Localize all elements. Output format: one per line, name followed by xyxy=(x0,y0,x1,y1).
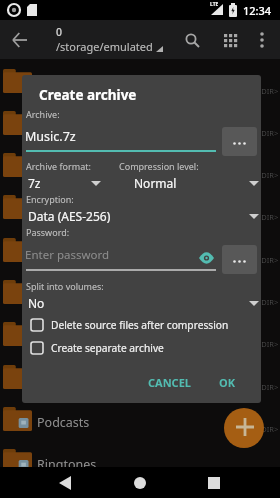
button[interactable] xyxy=(193,467,235,498)
staticText: <DIR> xyxy=(257,424,279,434)
button[interactable]: Alarms xyxy=(0,59,280,101)
button[interactable] xyxy=(249,27,275,53)
staticText: <DIR> xyxy=(257,170,279,180)
staticText: <DIR> xyxy=(257,339,279,349)
button[interactable]: OK xyxy=(208,371,247,393)
button[interactable] xyxy=(222,127,257,156)
staticText: <DIR> xyxy=(257,382,279,392)
button[interactable]: Music xyxy=(0,270,280,312)
button[interactable]: Ringtones xyxy=(0,439,280,481)
staticText: Encryption: xyxy=(26,193,74,205)
staticText: Download xyxy=(37,202,97,219)
staticText: Archive format: xyxy=(26,160,91,172)
staticText: Compression level: xyxy=(119,160,199,172)
button[interactable]: CANCEL xyxy=(132,371,207,393)
button[interactable]: 7z xyxy=(22,173,112,193)
staticText: Ringtones xyxy=(37,456,97,473)
button[interactable]: 0 xyxy=(56,25,163,54)
staticText: Alarms xyxy=(37,76,79,93)
staticText: Normal xyxy=(134,175,177,191)
staticText: Split into volumes: xyxy=(26,280,104,292)
staticText: 7z xyxy=(28,175,41,191)
staticText: <DIR> xyxy=(257,255,279,265)
staticText: CANCEL xyxy=(148,375,191,390)
button[interactable] xyxy=(119,467,161,498)
staticText: Create separate archive xyxy=(51,341,164,355)
button[interactable] xyxy=(222,245,257,274)
staticText: Create archive xyxy=(39,86,137,104)
button[interactable]: DCIM xyxy=(0,143,280,185)
staticText: <DIR> xyxy=(257,86,279,96)
staticText: 12:34 xyxy=(243,3,272,18)
staticText: Music xyxy=(37,287,72,304)
staticText: Delete source files after compression xyxy=(51,318,229,332)
button[interactable] xyxy=(6,26,34,54)
button[interactable]: Pictures xyxy=(0,355,280,397)
staticText: /storage/emulated xyxy=(56,39,153,54)
button[interactable]: Podcasts xyxy=(0,397,280,439)
button[interactable]: Create separate archive xyxy=(22,341,261,357)
button[interactable]: Download xyxy=(0,185,280,227)
button[interactable] xyxy=(224,408,264,448)
button[interactable]: Android xyxy=(0,101,280,143)
staticText: LTE xyxy=(210,1,219,8)
staticText: No xyxy=(28,295,45,311)
button[interactable]: Notifications xyxy=(0,312,280,354)
button[interactable]: Normal xyxy=(127,173,261,193)
staticText: Podcasts xyxy=(37,414,90,431)
staticText: <DIR> xyxy=(257,212,279,222)
staticText: Password: xyxy=(26,226,70,238)
button[interactable] xyxy=(44,467,86,498)
staticText: Enter password xyxy=(25,247,110,263)
button[interactable]: Music.7z xyxy=(22,123,220,153)
staticText: Data (AES-256) xyxy=(28,208,111,224)
button[interactable] xyxy=(217,27,244,54)
button[interactable]: Movies xyxy=(0,228,280,270)
staticText: <DIR> xyxy=(257,297,279,307)
button[interactable]: No xyxy=(22,293,261,313)
button[interactable]: Enter password xyxy=(22,241,220,271)
staticText: <DIR> xyxy=(257,466,279,476)
staticText: Notifications xyxy=(37,329,112,346)
staticText: DCIM xyxy=(37,160,70,177)
button[interactable] xyxy=(179,27,206,54)
staticText: <DIR> xyxy=(257,128,279,138)
staticText: Android xyxy=(37,118,84,135)
staticText: Music.7z xyxy=(25,128,76,145)
staticText: Archive: xyxy=(26,108,60,120)
staticText: Movies xyxy=(37,245,79,262)
staticText: 0 xyxy=(56,25,63,39)
staticText: OK xyxy=(219,375,236,390)
button[interactable]: Data (AES-256) xyxy=(22,206,261,226)
button[interactable]: Delete source files after compression xyxy=(22,318,261,334)
